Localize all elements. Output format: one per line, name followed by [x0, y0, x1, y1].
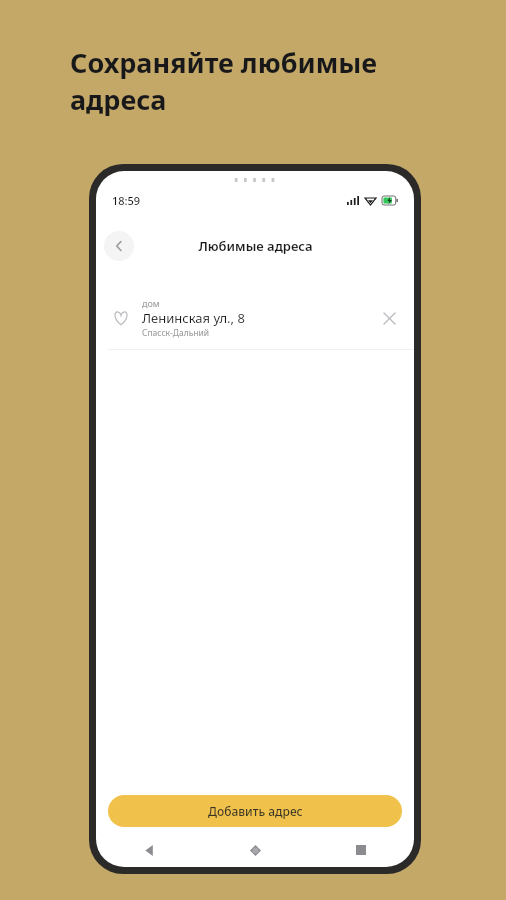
button[interactable]: Back	[96, 837, 202, 863]
staticText: Спасск-Дальний	[142, 327, 210, 339]
staticText: Сохраняйте любимые	[70, 44, 378, 81]
button[interactable]: Home	[202, 837, 308, 863]
staticText: Ленинская ул., 8	[142, 309, 245, 327]
staticText: Добавить адрес	[208, 803, 303, 819]
button[interactable]: Добавить адрес	[108, 795, 402, 827]
button[interactable]: дом	[96, 287, 414, 349]
button[interactable]: Recents	[308, 837, 414, 863]
button[interactable]: Удалить	[376, 305, 402, 331]
staticText: дом	[142, 297, 160, 309]
staticText: Любимые адреса	[198, 237, 313, 255]
staticText: 18:59	[112, 193, 141, 208]
button[interactable]: Назад	[104, 231, 134, 261]
staticText: адреса	[70, 81, 167, 118]
